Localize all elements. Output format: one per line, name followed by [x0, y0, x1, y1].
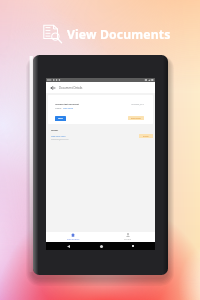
button[interactable]: Back: [58, 242, 78, 250]
staticText: View Documents: [67, 26, 171, 43]
staticText: VIEW: [58, 117, 63, 120]
staticText: Mike Smith Third: [51, 135, 66, 137]
staticText: Signees: [51, 129, 59, 132]
staticText: Profile: [124, 238, 131, 241]
staticText: Unimportant Document: [55, 103, 79, 106]
staticText: INVITE: [143, 135, 149, 137]
staticText: mikesmith@yahoo.com: [51, 138, 69, 140]
button[interactable]: Unimportant Document: [48, 95, 153, 124]
button[interactable]: Recent apps: [123, 242, 143, 250]
staticText: Documents: [67, 238, 80, 241]
button[interactable]: DOWNLOAD: [128, 116, 144, 120]
button[interactable]: VIEW: [55, 116, 66, 121]
button[interactable]: Profile: [100, 232, 155, 242]
button[interactable]: Back: [46, 82, 59, 93]
button[interactable]: INVITE: [139, 134, 153, 138]
button[interactable]: Documents: [46, 232, 100, 242]
staticText: Author:: [55, 107, 62, 110]
staticText: Mark Smith: [63, 107, 74, 110]
staticText: Document Details: [59, 86, 83, 90]
button[interactable]: Home: [91, 242, 111, 250]
staticText: Uploaded Jan 3: [131, 103, 144, 105]
staticText: DOWNLOAD: [131, 117, 141, 119]
